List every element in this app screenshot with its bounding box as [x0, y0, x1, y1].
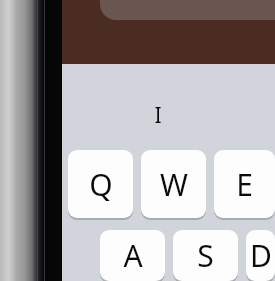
staticText: Q — [89, 164, 113, 205]
staticText: D — [250, 235, 272, 276]
button[interactable]: I — [136, 100, 180, 130]
button[interactable] — [100, 0, 275, 20]
button[interactable]: W — [141, 150, 206, 218]
staticText: E — [236, 164, 253, 205]
button[interactable]: D — [246, 230, 275, 281]
button[interactable]: E — [214, 150, 275, 218]
staticText: W — [160, 164, 188, 205]
staticText: I — [154, 101, 162, 130]
staticText: S — [197, 235, 214, 276]
button[interactable]: A — [100, 230, 165, 281]
staticText: A — [123, 235, 143, 276]
button[interactable]: Q — [68, 150, 133, 218]
button[interactable]: S — [173, 230, 238, 281]
